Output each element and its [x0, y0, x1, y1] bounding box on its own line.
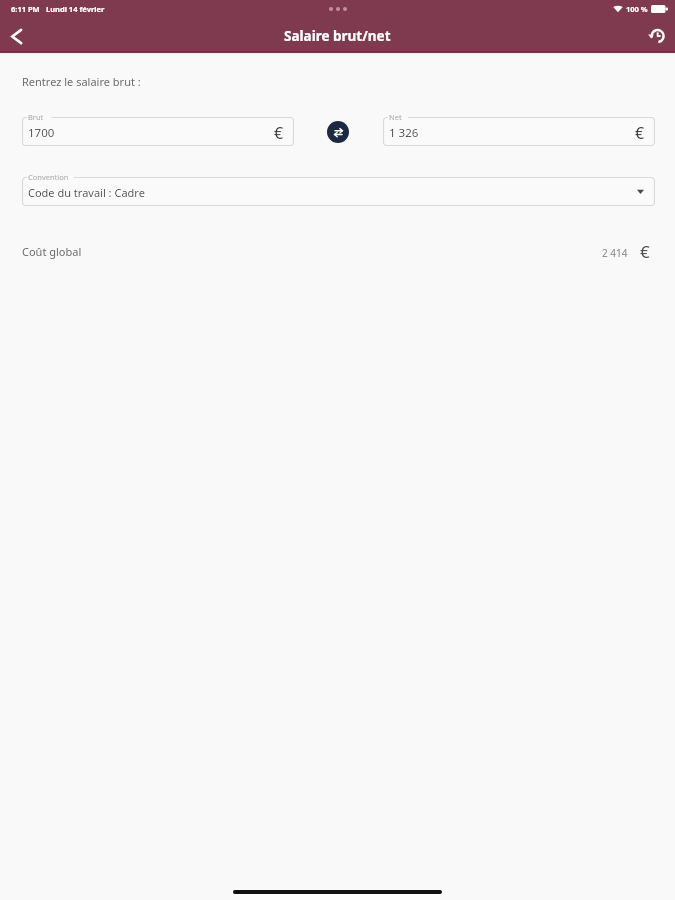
button[interactable]	[22, 117, 294, 146]
button[interactable]: Historique	[643, 22, 671, 50]
staticText: €	[635, 122, 645, 144]
staticText: 2 414	[602, 246, 628, 260]
staticText: Net	[389, 112, 402, 122]
button[interactable]: Inverser brut et net	[327, 121, 349, 143]
button[interactable]	[22, 177, 655, 206]
staticText: €	[274, 122, 284, 144]
staticText: Coût global	[22, 244, 82, 259]
staticText: Rentrez le salaire brut :	[22, 74, 141, 89]
button[interactable]: Retour	[1, 21, 31, 51]
staticText: Code du travail : Cadre	[28, 185, 145, 200]
button[interactable]	[383, 117, 655, 146]
staticText: 1700	[28, 125, 55, 141]
staticText: Brut	[28, 112, 44, 122]
staticText: Salaire brut/net	[284, 27, 391, 45]
staticText: 100 %	[626, 4, 648, 14]
staticText: 6:11 PM	[11, 4, 40, 14]
staticText: Lundi 14 février	[46, 4, 105, 14]
staticText: €	[640, 240, 650, 263]
staticText: Convention	[28, 172, 69, 182]
staticText: 1 326	[389, 125, 419, 141]
